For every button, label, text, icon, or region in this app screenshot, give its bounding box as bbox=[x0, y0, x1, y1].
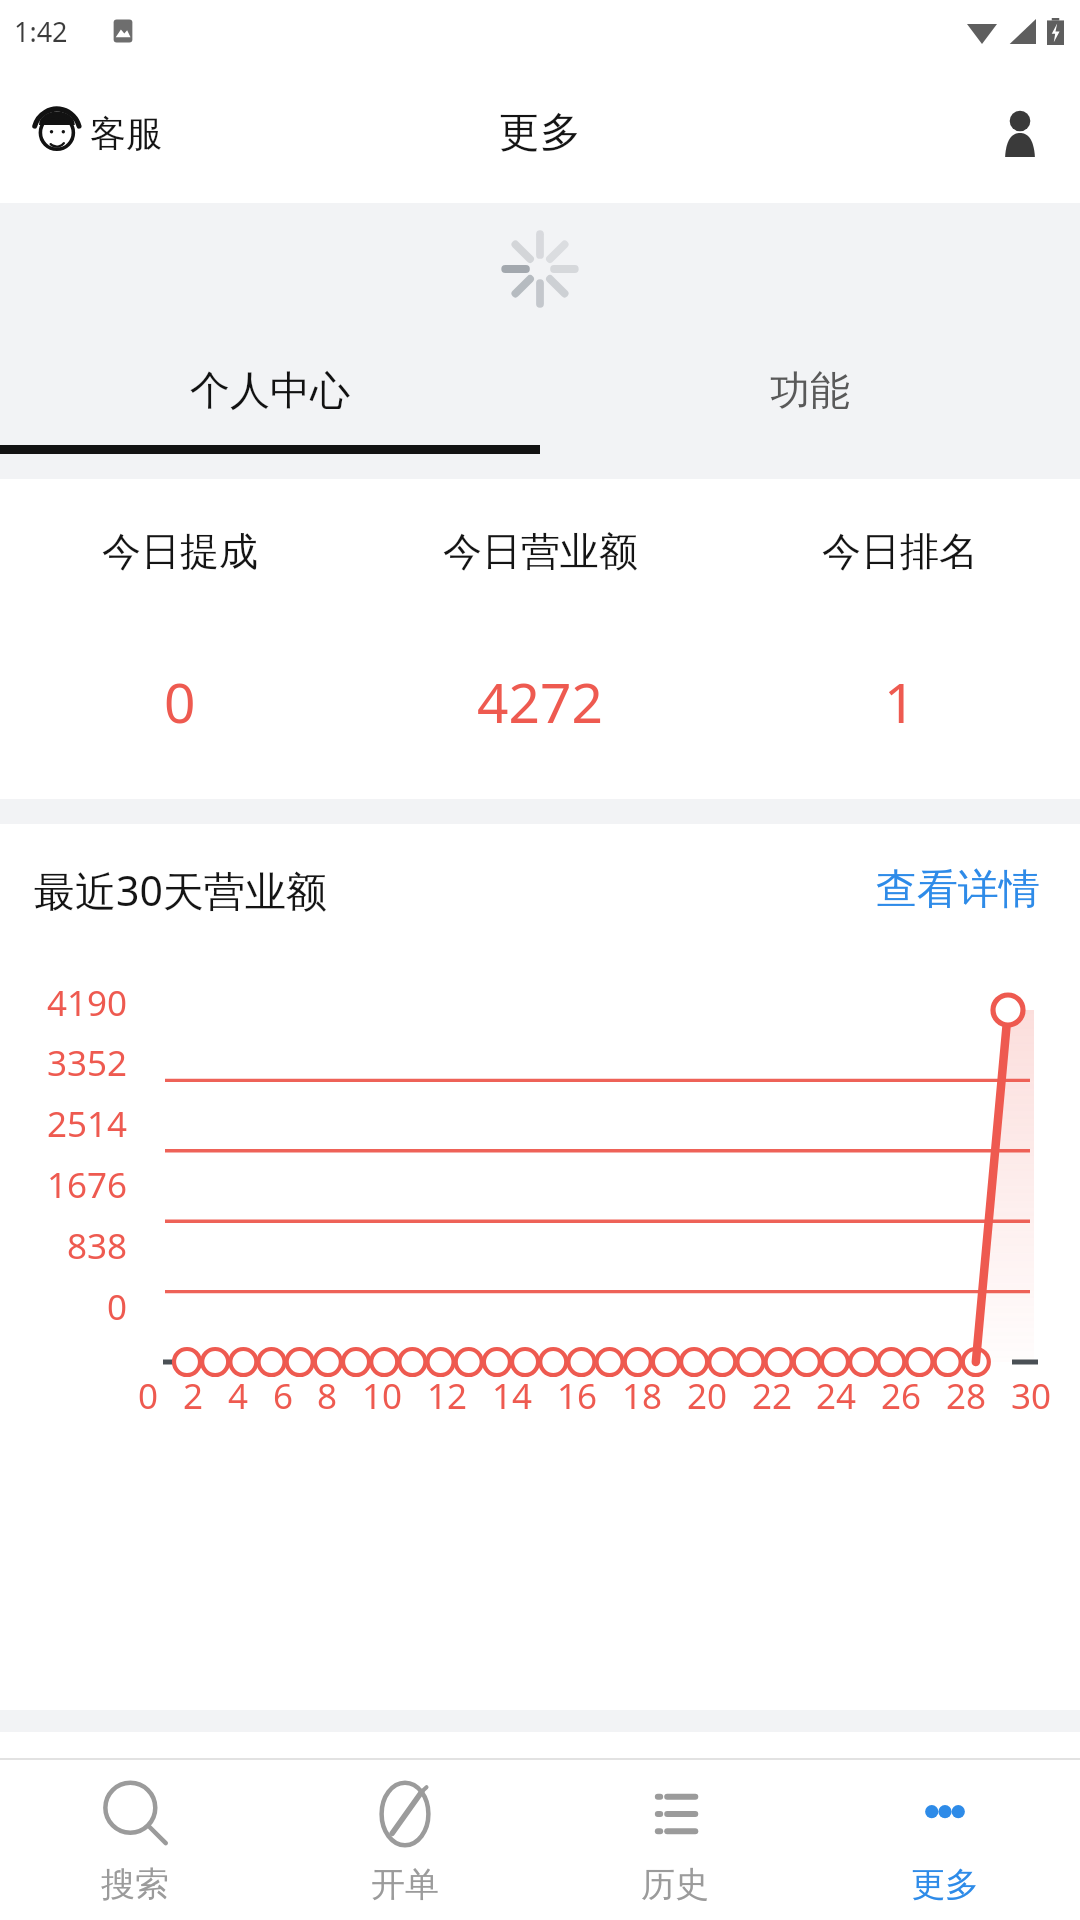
button[interactable]: 更多 bbox=[810, 1760, 1080, 1920]
staticText: 开单 bbox=[371, 1863, 439, 1906]
staticText: 今日提成 bbox=[102, 527, 258, 576]
staticText: 24 bbox=[816, 1372, 857, 1420]
staticText: 20 bbox=[687, 1372, 728, 1420]
staticText: 0 bbox=[107, 1283, 128, 1331]
button[interactable]: 个人中心 bbox=[0, 335, 540, 445]
button[interactable]: 查看详情 bbox=[870, 858, 1046, 922]
staticText: 最近30天营业额 bbox=[34, 862, 327, 918]
staticText: 4 bbox=[228, 1372, 249, 1420]
staticText: 今日排名 bbox=[822, 527, 978, 576]
staticText: 838 bbox=[67, 1222, 128, 1270]
staticText: 18 bbox=[622, 1372, 663, 1420]
staticText: 0 bbox=[138, 1372, 159, 1420]
staticText: 0 bbox=[164, 664, 196, 739]
button[interactable]: Profile bbox=[990, 103, 1050, 163]
button[interactable]: 功能 bbox=[540, 335, 1080, 445]
staticText: 历史 bbox=[641, 1863, 709, 1906]
button[interactable]: 开单 bbox=[270, 1760, 540, 1920]
staticText: 12 bbox=[427, 1372, 468, 1420]
staticText: 1:42 bbox=[14, 13, 68, 50]
staticText: 4272 bbox=[477, 664, 603, 739]
staticText: 功能 bbox=[770, 365, 850, 415]
staticText: 16 bbox=[557, 1372, 598, 1420]
staticText: 今日营业额 bbox=[443, 527, 638, 576]
staticText: 更多 bbox=[499, 107, 581, 159]
staticText: 6 bbox=[273, 1372, 294, 1420]
staticText: 查看详情 bbox=[876, 864, 1040, 916]
staticText: 4190 bbox=[47, 979, 128, 1027]
staticText: 2514 bbox=[47, 1100, 128, 1148]
staticText: 2 bbox=[183, 1372, 204, 1420]
staticText: 更多 bbox=[911, 1863, 979, 1906]
staticText: 28 bbox=[946, 1372, 987, 1420]
staticText: 个人中心 bbox=[190, 365, 350, 415]
staticText: 14 bbox=[492, 1372, 533, 1420]
button[interactable]: 搜索 bbox=[0, 1760, 270, 1920]
button[interactable]: 客服 bbox=[26, 101, 166, 165]
staticText: 1676 bbox=[47, 1161, 128, 1209]
staticText: 搜索 bbox=[101, 1863, 169, 1906]
staticText: 1 bbox=[884, 664, 916, 739]
staticText: 26 bbox=[881, 1372, 922, 1420]
staticText: 30 bbox=[1011, 1372, 1052, 1420]
staticText: 10 bbox=[362, 1372, 403, 1420]
staticText: 8 bbox=[317, 1372, 338, 1420]
staticText: 3352 bbox=[47, 1039, 128, 1087]
staticText: 客服 bbox=[90, 111, 162, 156]
button[interactable]: 历史 bbox=[540, 1760, 810, 1920]
staticText: 22 bbox=[752, 1372, 793, 1420]
